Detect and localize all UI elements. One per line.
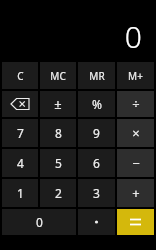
button[interactable]: + xyxy=(117,179,154,207)
button[interactable]: Equals xyxy=(117,209,154,235)
button[interactable]: MC xyxy=(40,62,76,89)
staticText: ÷ xyxy=(132,95,140,113)
staticText: 7 xyxy=(17,125,24,141)
button[interactable]: ± xyxy=(40,91,76,117)
button[interactable]: 7 xyxy=(2,119,38,147)
button[interactable]: 6 xyxy=(78,149,115,177)
staticText: MC xyxy=(50,69,66,83)
staticText: 6 xyxy=(93,155,100,171)
button[interactable]: 8 xyxy=(40,119,76,147)
button[interactable]: 2 xyxy=(40,179,76,207)
button[interactable]: Backspace xyxy=(2,91,38,117)
staticText: % xyxy=(92,96,102,112)
staticText: + xyxy=(132,184,140,202)
button[interactable]: Decimal point xyxy=(78,209,115,235)
staticText: 2 xyxy=(55,185,62,201)
button[interactable]: MR xyxy=(78,62,115,89)
staticText: 5 xyxy=(55,155,62,171)
button[interactable]: 4 xyxy=(2,149,38,177)
staticText: 4 xyxy=(17,155,24,171)
staticText: MR xyxy=(89,69,105,83)
staticText: 9 xyxy=(93,125,100,141)
button[interactable]: 3 xyxy=(78,179,115,207)
staticText: 1 xyxy=(17,185,24,201)
staticText: 8 xyxy=(55,125,62,141)
button[interactable]: C xyxy=(2,62,38,89)
staticText: C xyxy=(17,69,24,83)
button[interactable]: 5 xyxy=(40,149,76,177)
button[interactable]: M+ xyxy=(117,62,154,89)
staticText: M+ xyxy=(128,69,143,83)
button[interactable]: 1 xyxy=(2,179,38,207)
button[interactable]: × xyxy=(117,119,154,147)
button[interactable]: 0 xyxy=(2,209,76,235)
staticText: 0 xyxy=(36,214,43,230)
button[interactable]: % xyxy=(78,91,115,117)
button[interactable]: ÷ xyxy=(117,91,154,117)
staticText: 3 xyxy=(93,185,100,201)
button[interactable]: 9 xyxy=(78,119,115,147)
staticText: 0 xyxy=(124,16,142,57)
staticText: ± xyxy=(54,95,62,113)
button[interactable]: − xyxy=(117,149,154,177)
staticText: − xyxy=(132,154,140,172)
staticText: × xyxy=(132,124,140,142)
